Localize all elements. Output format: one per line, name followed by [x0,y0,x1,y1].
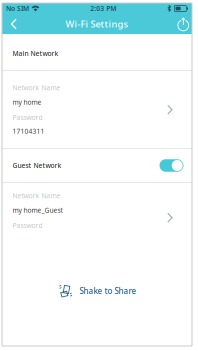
staticText: my home [12,98,41,106]
staticText: Shake to Share [79,286,136,296]
button[interactable]: Network Name [2,71,192,148]
button[interactable]: Back [2,14,25,34]
staticText: Password [12,221,42,230]
staticText: Network Name [12,191,60,200]
staticText: my home_Guest [12,206,62,214]
staticText: 17104311 [12,127,44,136]
staticText: Network Name [12,83,60,92]
button[interactable]: Network Name [2,183,192,252]
button[interactable]: Guest Network [159,159,183,172]
button[interactable]: Reboot router [171,14,192,34]
button[interactable]: Shake to Share [2,252,192,330]
staticText: Password [12,113,42,122]
staticText: Main Network [12,49,58,58]
staticText: No SIM [6,4,29,13]
staticText: 2:03 PM [90,4,116,13]
staticText: Guest Network [12,161,61,170]
staticText: Wi-Fi Settings [65,18,128,30]
